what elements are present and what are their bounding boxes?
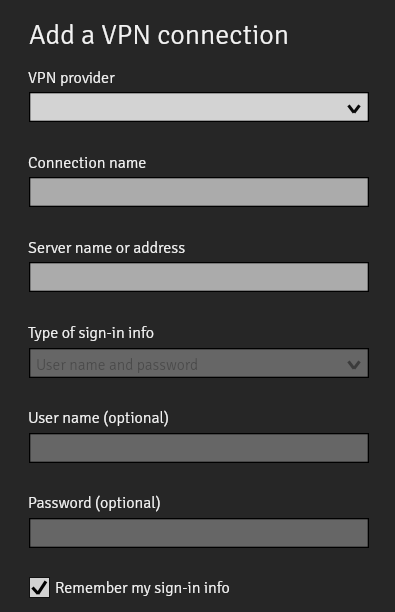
button[interactable] [29, 518, 369, 548]
staticText: Type of sign-in info [28, 323, 155, 343]
staticText: User name (optional) [28, 408, 169, 428]
staticText: Remember my sign-in info [55, 578, 230, 598]
button[interactable] [29, 177, 369, 207]
staticText: Password (optional) [28, 493, 161, 513]
button[interactable] [29, 262, 369, 292]
button[interactable] [29, 433, 369, 463]
button[interactable]: User name and password [29, 348, 369, 378]
button[interactable]: Remember my sign-in info [29, 577, 230, 598]
other: Open dropdown [344, 355, 364, 375]
other: Open dropdown [344, 99, 364, 119]
staticText: Connection name [28, 153, 147, 173]
staticText: Add a VPN connection [29, 18, 290, 52]
staticText: Server name or address [28, 238, 186, 258]
button[interactable]: Open dropdown [29, 92, 369, 122]
staticText: User name and password [36, 355, 199, 374]
staticText: VPN provider [28, 68, 115, 88]
